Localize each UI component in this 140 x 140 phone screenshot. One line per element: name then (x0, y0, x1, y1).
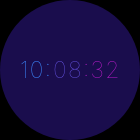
staticText: :32 (83, 56, 121, 84)
button[interactable]: 10: (0, 0, 140, 140)
staticText: 08 (53, 56, 83, 84)
staticText: 10: (20, 56, 53, 84)
